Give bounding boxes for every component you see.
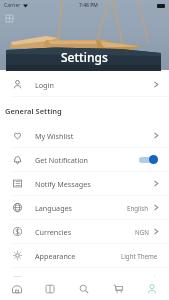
staticText: Get Notification <box>35 155 89 165</box>
button[interactable]: Notify Messages <box>0 172 169 195</box>
button[interactable]: Cart <box>101 277 135 300</box>
button[interactable]: Languages <box>0 196 169 219</box>
staticText: Light Theme <box>121 252 158 260</box>
button[interactable]: Delete Account <box>0 268 169 291</box>
button[interactable]: My Wishlist <box>0 124 169 147</box>
staticText: Notify Messages <box>35 179 91 189</box>
button[interactable]: Categories <box>33 277 67 300</box>
staticText: Currencies <box>35 227 72 237</box>
staticText: Appearance <box>35 251 76 261</box>
button[interactable]: Appearance <box>0 244 169 267</box>
staticText: Settings <box>61 49 108 65</box>
button[interactable]: Account <box>135 277 169 300</box>
button[interactable]: Search <box>67 277 101 300</box>
staticText: 7:48 PM <box>79 2 98 9</box>
staticText: Login <box>35 80 54 90</box>
staticText: Carrier <box>4 2 21 9</box>
button[interactable]: Get Notification <box>0 148 169 171</box>
staticText: NGN <box>135 228 149 236</box>
staticText: General Setting <box>5 106 62 116</box>
button[interactable]: Home <box>0 277 33 300</box>
staticText: Languages <box>35 203 73 213</box>
staticText: Delete Account <box>35 275 87 285</box>
staticText: My Wishlist <box>35 131 74 141</box>
button[interactable]: Login <box>0 73 169 96</box>
staticText: English <box>127 204 149 212</box>
button[interactable]: Currencies <box>0 220 169 243</box>
